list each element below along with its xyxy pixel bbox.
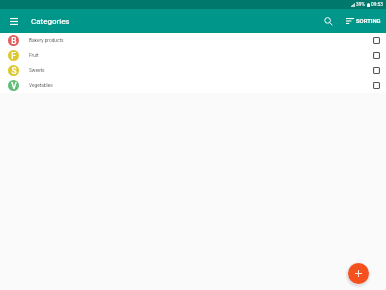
staticText: B: [11, 36, 17, 46]
staticText: Vegetables: [29, 83, 53, 89]
button[interactable]: Select Bakery products: [370, 34, 383, 47]
button[interactable]: Select Fruit: [370, 49, 383, 62]
button[interactable]: V: [0, 78, 386, 93]
staticText: F: [11, 51, 16, 61]
button[interactable]: Add category: [348, 263, 369, 284]
staticText: SORTING: [356, 18, 381, 25]
staticText: 09:53: [371, 2, 383, 8]
button[interactable]: B: [0, 33, 386, 48]
staticText: Fruit: [29, 53, 39, 59]
button[interactable]: Search: [319, 12, 337, 30]
button[interactable]: Open navigation menu: [2, 10, 25, 33]
staticText: Bakery products: [29, 38, 64, 44]
button[interactable]: S: [0, 63, 386, 78]
staticText: S: [11, 66, 17, 76]
staticText: V: [11, 81, 17, 91]
staticText: 39%: [356, 2, 365, 8]
staticText: Sweets: [29, 68, 45, 74]
staticText: Categories: [31, 17, 70, 26]
button[interactable]: Select Vegetables: [370, 79, 383, 92]
button[interactable]: Select Sweets: [370, 64, 383, 77]
button[interactable]: SORTING: [343, 12, 384, 29]
button[interactable]: F: [0, 48, 386, 63]
